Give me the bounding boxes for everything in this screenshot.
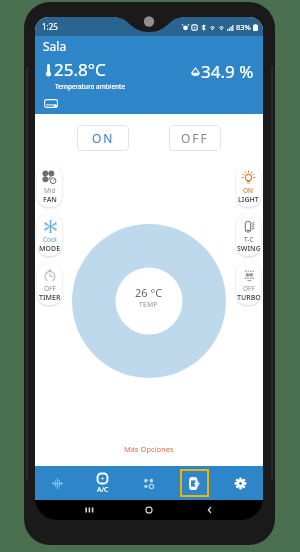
staticText: MODE [39,244,61,254]
staticText: 26 °C [135,285,163,300]
staticText: Más Opciones [124,444,174,454]
button[interactable]: Settings [226,469,255,497]
button[interactable]: MODE [37,214,62,256]
button[interactable]: LIGHT [236,165,261,207]
staticText: FAN [43,195,57,205]
button[interactable]: FAN [37,165,62,207]
staticText: TEMP [139,300,159,309]
staticText: 34.9 % [201,60,254,83]
button[interactable]: TIMER [37,263,62,305]
staticText: A/C [97,485,109,495]
staticText: Mid [44,186,56,195]
staticText: LIGHT [238,195,259,205]
staticText: OFF [243,284,255,293]
staticText: Sala [43,38,67,54]
button[interactable]: Remote [180,469,209,497]
staticText: TURBO [237,293,261,303]
button[interactable]: Devices [134,469,163,497]
button[interactable]: SWING [236,214,261,256]
staticText: SWING [237,244,261,254]
button[interactable]: Voice [43,469,72,497]
staticText: ON [243,186,254,195]
staticText: 83% [236,22,251,32]
button[interactable]: OFF [169,125,221,151]
staticText: Temperatura ambiente [55,82,126,91]
staticText: 25.8°C [54,58,106,81]
button[interactable]: Más Opciones [110,436,188,466]
button[interactable]: Recents [82,503,96,517]
staticText: OFF [181,130,209,146]
staticText: 1:25 [42,21,58,32]
button[interactable]: ON [77,125,129,151]
staticText: OFF [44,284,56,293]
button[interactable]: Back [203,503,217,517]
button[interactable]: TURBO [236,263,261,305]
staticText: Cool [43,235,57,244]
staticText: T-C [244,235,254,244]
button[interactable]: A/C [88,469,117,497]
staticText: ON [92,130,115,146]
button[interactable]: Home [142,503,156,517]
staticText: TIMER [39,293,61,303]
